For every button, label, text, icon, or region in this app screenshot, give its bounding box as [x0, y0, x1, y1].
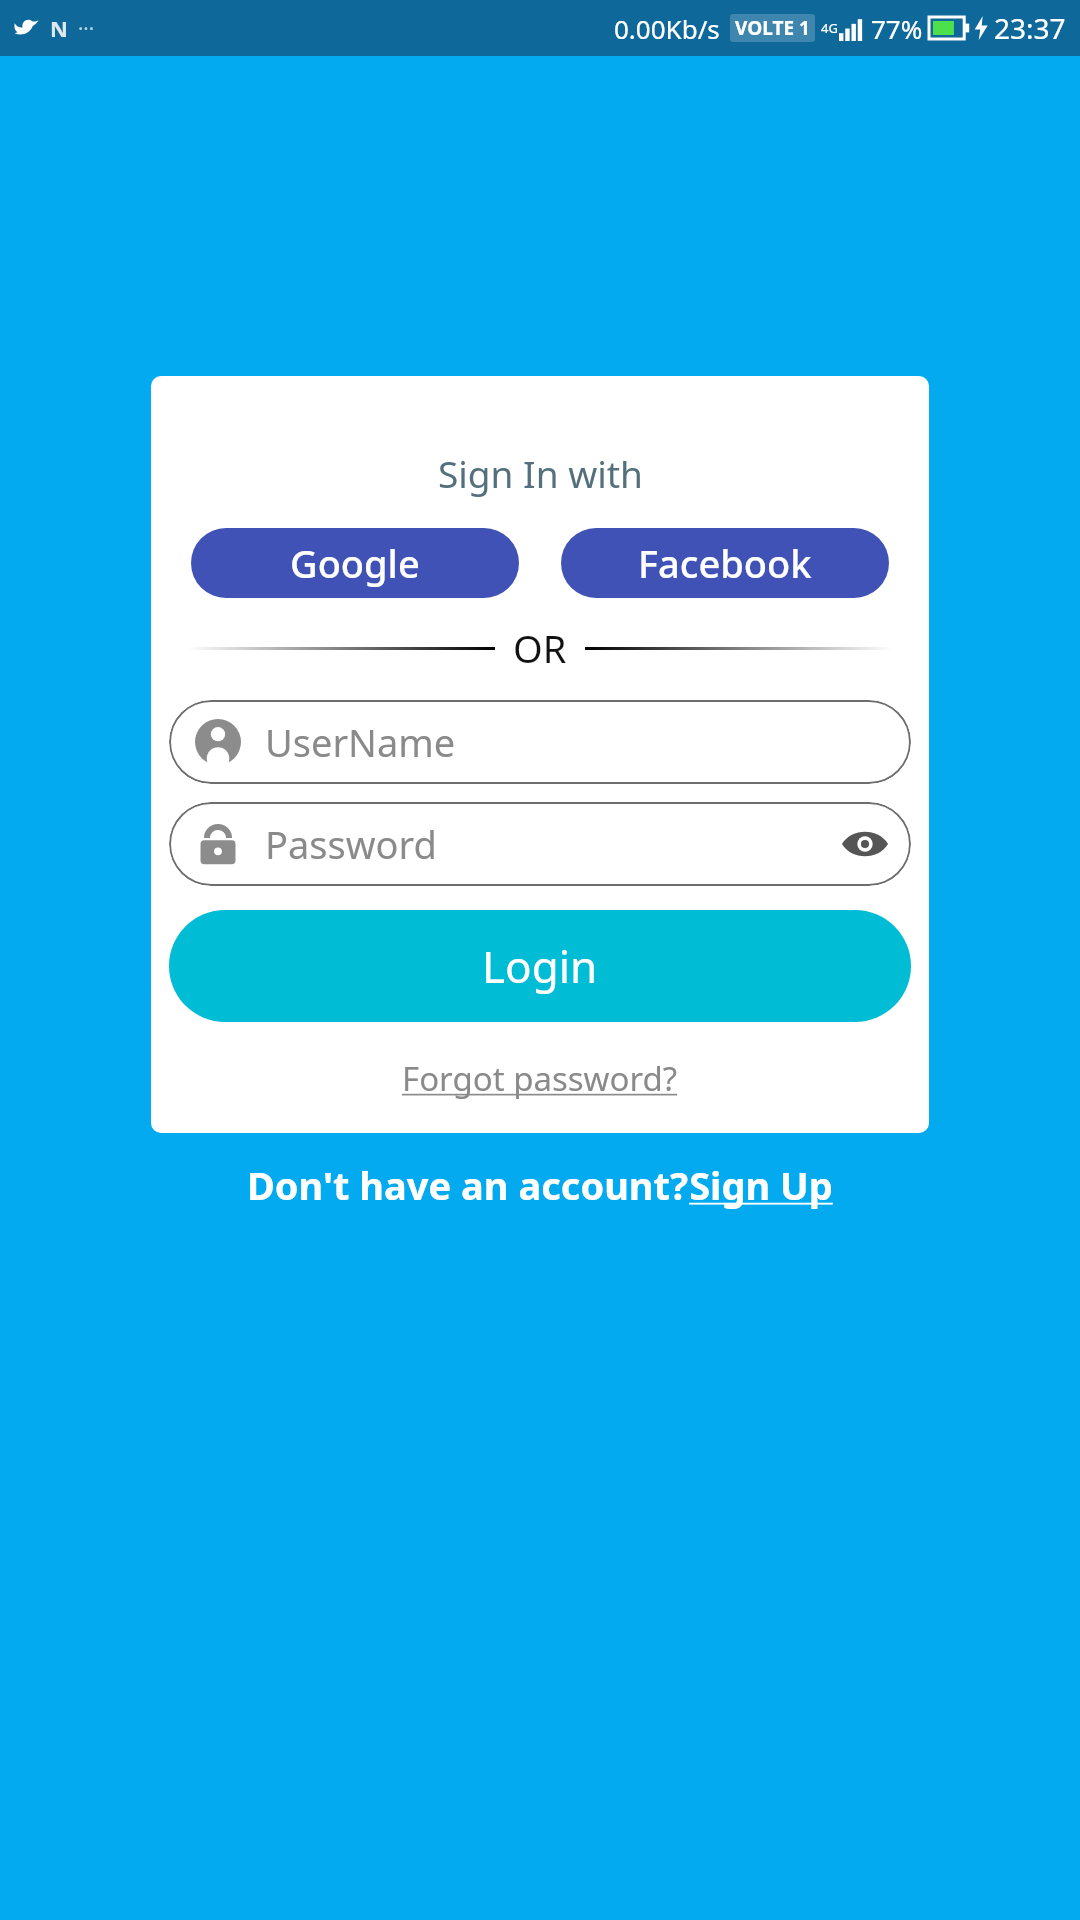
staticText: Password	[265, 818, 437, 870]
button[interactable]: Sign Up	[689, 1159, 833, 1211]
button[interactable]: Forgot password?	[396, 1050, 684, 1107]
staticText: Don't have an account?	[247, 1159, 689, 1211]
button[interactable]: Facebook	[561, 528, 889, 598]
staticText: 4G	[821, 19, 838, 37]
staticText: Forgot password?	[402, 1056, 678, 1101]
staticText: Login	[482, 936, 598, 996]
button[interactable]: Google	[191, 528, 519, 598]
staticText: VOLTE 1	[735, 15, 810, 41]
staticText: 23:37	[994, 9, 1066, 47]
button[interactable]: Show password	[839, 818, 891, 870]
button[interactable]: UserName	[169, 700, 911, 784]
staticText: Google	[290, 537, 420, 589]
staticText: OR	[513, 622, 567, 674]
staticText: UserName	[265, 716, 456, 768]
staticText: Facebook	[638, 537, 812, 589]
staticText: ···	[78, 15, 95, 42]
staticText: Sign Up	[689, 1159, 833, 1211]
staticText: Sign In with	[438, 448, 643, 498]
staticText: 0.00Kb/s	[614, 11, 720, 46]
staticText: 77%	[871, 11, 923, 46]
button[interactable]: Password	[169, 802, 911, 886]
button[interactable]: Login	[169, 910, 911, 1022]
staticText: N	[50, 13, 68, 43]
